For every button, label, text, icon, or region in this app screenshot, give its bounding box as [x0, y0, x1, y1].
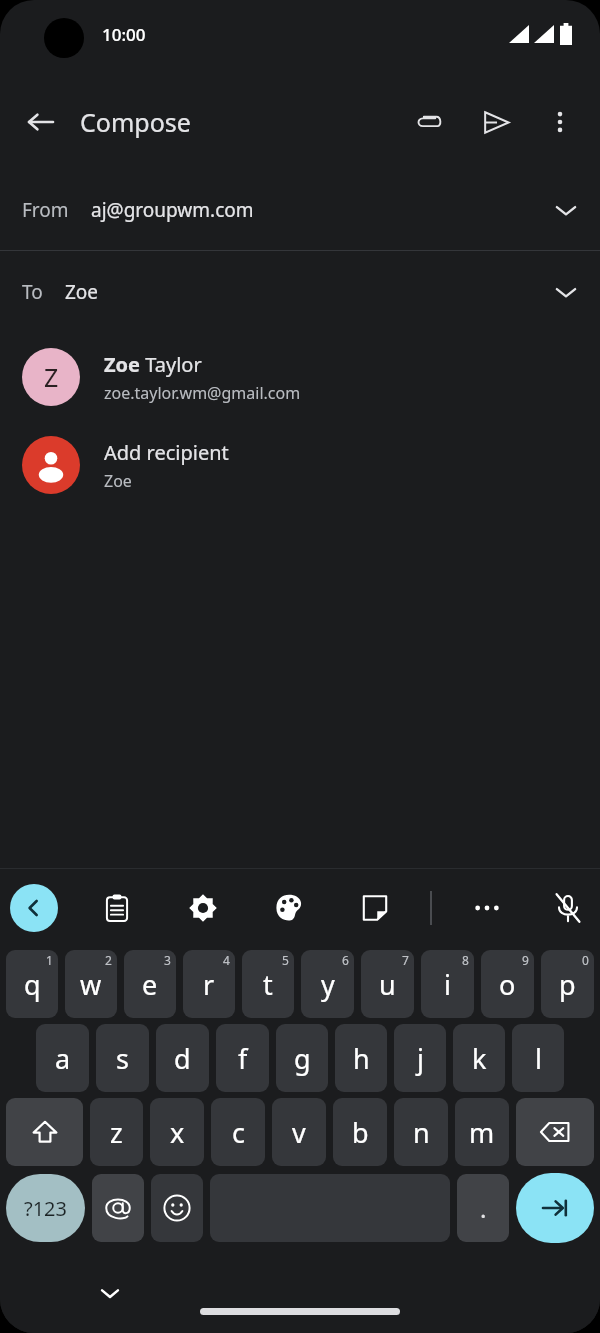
staticText: w: [80, 966, 102, 1003]
staticText: t: [263, 966, 273, 1003]
button[interactable]: g: [276, 1024, 328, 1092]
staticText: 2: [105, 952, 112, 968]
button[interactable]: s: [96, 1024, 149, 1092]
button[interactable]: Add recipient: [0, 421, 600, 509]
staticText: ?123: [24, 1195, 67, 1222]
button[interactable]: r: [183, 950, 235, 1018]
button[interactable]: k: [453, 1024, 505, 1092]
button[interactable]: Hide keyboard: [88, 1271, 132, 1315]
staticText: 9: [522, 952, 529, 968]
button[interactable]: Themes: [267, 886, 311, 930]
button[interactable]: d: [156, 1024, 209, 1092]
button[interactable]: w: [65, 950, 117, 1018]
staticText: h: [353, 1040, 370, 1077]
button[interactable]: i: [421, 950, 474, 1018]
button[interactable]: Clipboard: [95, 886, 139, 930]
staticText: .: [480, 1192, 487, 1225]
staticText: 6: [342, 952, 349, 968]
staticText: 4: [223, 952, 230, 968]
staticText: c: [232, 1114, 245, 1151]
staticText: z: [110, 1114, 123, 1151]
button[interactable]: p: [541, 950, 594, 1018]
staticText: i: [444, 966, 451, 1003]
button[interactable]: m: [455, 1098, 509, 1166]
button[interactable]: n: [394, 1098, 448, 1166]
button[interactable]: Previous: [10, 884, 58, 932]
button[interactable]: ?123: [6, 1174, 85, 1242]
staticText: v: [292, 1114, 306, 1151]
staticText: j: [417, 1040, 424, 1077]
staticText: Compose: [80, 105, 191, 139]
button[interactable]: t: [242, 950, 294, 1018]
button[interactable]: a: [36, 1024, 89, 1092]
button[interactable]: Shift: [6, 1098, 83, 1166]
staticText: 8: [462, 952, 469, 968]
staticText: b: [352, 1114, 369, 1151]
button[interactable]: At sign: [92, 1174, 144, 1242]
button[interactable]: f: [216, 1024, 269, 1092]
button[interactable]: c: [211, 1098, 265, 1166]
staticText: g: [294, 1040, 311, 1077]
button[interactable]: q: [6, 950, 58, 1018]
button[interactable]: x: [150, 1098, 204, 1166]
staticText: Zoe: [104, 470, 132, 492]
staticText: 0: [582, 952, 589, 968]
staticText: Zoe Taylor: [104, 351, 202, 378]
button[interactable]: e: [124, 950, 176, 1018]
button[interactable]: From: [0, 170, 600, 250]
button[interactable]: Attach file: [402, 96, 454, 148]
staticText: e: [142, 966, 158, 1003]
staticText: From: [22, 197, 69, 223]
staticText: q: [24, 966, 41, 1003]
staticText: 3: [164, 952, 171, 968]
staticText: aj@groupwm.com: [91, 197, 254, 223]
staticText: p: [559, 966, 576, 1003]
button[interactable]: y: [301, 950, 354, 1018]
button[interactable]: v: [272, 1098, 326, 1166]
staticText: o: [499, 966, 516, 1003]
button[interactable]: More options: [534, 96, 586, 148]
staticText: m: [469, 1114, 495, 1151]
staticText: k: [472, 1040, 487, 1077]
staticText: Zoe: [65, 279, 99, 305]
button[interactable]: To: [0, 251, 600, 333]
staticText: Z: [44, 360, 59, 394]
staticText: To: [22, 279, 43, 305]
button[interactable]: .: [457, 1174, 509, 1242]
staticText: 7: [402, 952, 409, 968]
button[interactable]: o: [481, 950, 534, 1018]
staticText: r: [203, 966, 215, 1003]
staticText: y: [321, 966, 335, 1003]
button[interactable]: Next: [516, 1173, 594, 1243]
button[interactable]: z: [90, 1098, 143, 1166]
button[interactable]: l: [512, 1024, 564, 1092]
button[interactable]: Settings: [181, 886, 225, 930]
staticText: s: [116, 1040, 129, 1077]
button[interactable]: Backspace: [516, 1098, 594, 1166]
button[interactable]: Mic off: [546, 886, 590, 930]
staticText: 1: [46, 952, 53, 968]
button[interactable]: j: [394, 1024, 446, 1092]
staticText: l: [535, 1040, 542, 1077]
staticText: f: [238, 1040, 248, 1077]
staticText: zoe.taylor.wm@gmail.com: [104, 382, 301, 404]
button[interactable]: u: [361, 950, 414, 1018]
staticText: 5: [282, 952, 289, 968]
button[interactable]: More: [465, 886, 509, 930]
button[interactable]: Z: [0, 333, 600, 421]
staticText: n: [413, 1114, 430, 1151]
staticText: Add recipient: [104, 439, 229, 466]
staticText: x: [170, 1114, 185, 1151]
staticText: u: [379, 966, 396, 1003]
button[interactable]: Emoji: [151, 1174, 203, 1242]
button[interactable]: h: [335, 1024, 387, 1092]
button[interactable]: Back: [14, 96, 66, 148]
staticText: d: [174, 1040, 191, 1077]
button[interactable]: b: [333, 1098, 387, 1166]
button[interactable]: Send: [470, 96, 522, 148]
staticText: 10:00: [102, 23, 146, 46]
staticText: a: [55, 1040, 71, 1077]
button[interactable]: Sticker: [353, 886, 397, 930]
